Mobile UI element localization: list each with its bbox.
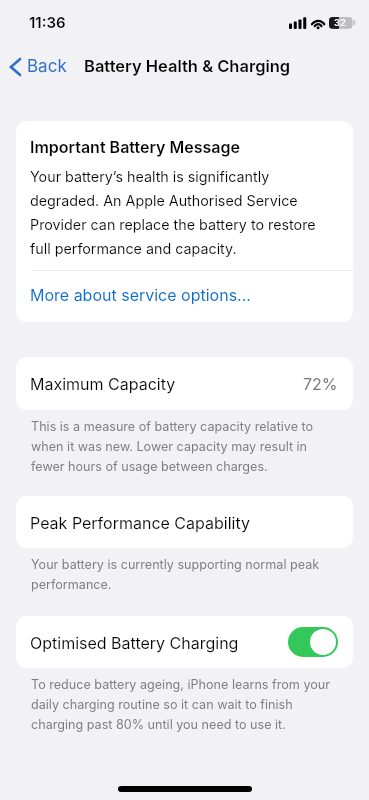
staticText: To reduce battery ageing, iPhone learns … (31, 673, 330, 733)
staticText: 72% (303, 374, 338, 393)
button[interactable]: Optimised Battery Charging (16, 616, 353, 668)
staticText: Peak Performance Capability (30, 513, 250, 532)
button[interactable]: Optimised Battery Charging (288, 627, 338, 657)
button[interactable]: Peak Performance Capability (16, 496, 353, 548)
staticText: 32 (334, 17, 346, 28)
staticText: More about service options... (30, 285, 251, 304)
staticText: Battery Health & Charging (84, 56, 291, 76)
staticText: Important Battery Message (30, 137, 240, 156)
staticText: Back (27, 56, 67, 77)
staticText: This is a measure of battery capacity re… (31, 415, 314, 475)
staticText: Optimised Battery Charging (30, 633, 239, 652)
staticText: 11:36 (29, 13, 66, 31)
staticText: Your battery’s health is significantly d… (30, 163, 316, 259)
button[interactable]: More about service options... (16, 271, 353, 322)
button[interactable]: Back (0, 51, 75, 82)
button[interactable]: Maximum Capacity (16, 357, 353, 410)
staticText: Maximum Capacity (30, 374, 176, 393)
staticText: Your battery is currently supporting nor… (31, 553, 320, 593)
